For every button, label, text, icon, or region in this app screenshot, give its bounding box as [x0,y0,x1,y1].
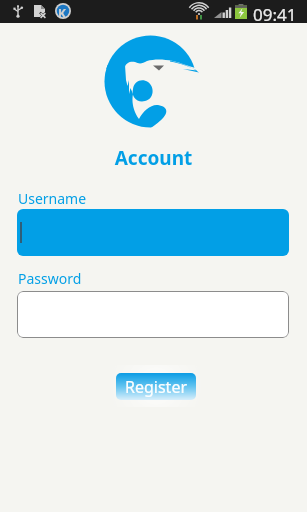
staticText: Password [18,269,82,288]
button[interactable] [17,209,289,256]
button[interactable]: Register [116,373,196,400]
button[interactable] [17,291,289,338]
staticText: Account [0,145,307,171]
staticText: Username [18,189,87,208]
staticText: Register [125,376,188,398]
staticText: K [58,5,66,21]
staticText: 09:41 [253,3,297,26]
